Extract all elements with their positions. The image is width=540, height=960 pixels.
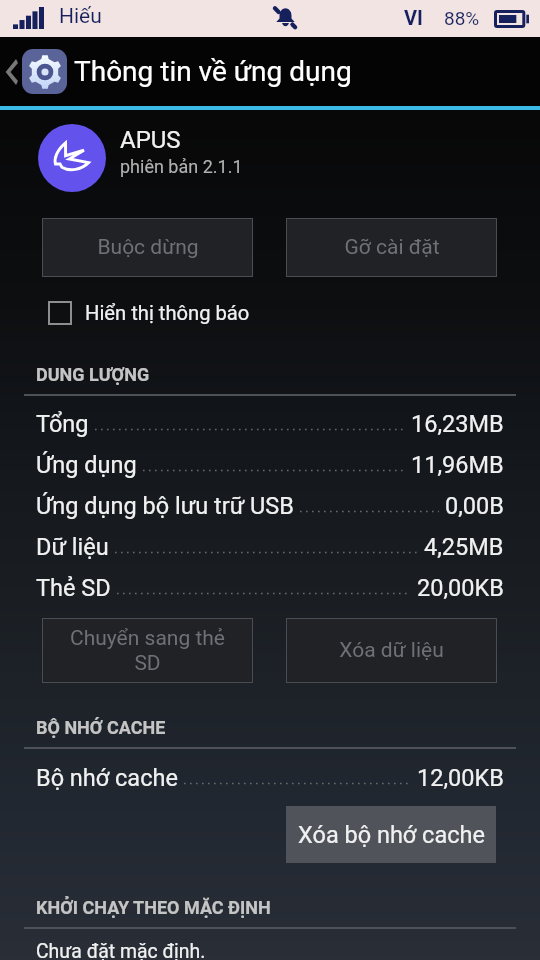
staticText: 4,25MB — [424, 533, 504, 561]
staticText: Thẻ SD — [36, 574, 111, 602]
staticText: APUS — [120, 126, 181, 154]
staticText: phiên bản 2.1.1 — [120, 156, 243, 177]
staticText: Xóa dữ liệu — [339, 638, 444, 663]
staticText: KHỞI CHẠY THEO MẶC ĐỊNH — [36, 897, 271, 918]
button[interactable]: Chuyển sang thẻ SD — [42, 618, 253, 683]
staticText: DUNG LƯỢNG — [36, 364, 150, 385]
staticText: Ứng dụng bộ lưu trữ USB — [36, 492, 294, 520]
staticText: Gỡ cài đặt — [344, 235, 440, 260]
staticText: 0,00B — [445, 492, 504, 520]
staticText: Buộc dừng — [97, 235, 199, 260]
staticText: Xóa bộ nhớ cache — [298, 821, 485, 849]
staticText: 20,00KB — [417, 574, 504, 602]
staticText: 16,23MB — [411, 410, 504, 438]
staticText: Tổng — [36, 410, 89, 438]
staticText: 11,96MB — [411, 451, 504, 479]
staticText: 12,00KB — [417, 764, 504, 792]
button[interactable]: Ứng dụng — [0, 444, 540, 485]
staticText: VI — [404, 6, 423, 29]
button[interactable]: Bộ nhớ cache — [0, 757, 540, 798]
staticText: Dữ liệu — [36, 533, 109, 561]
button[interactable]: Xóa dữ liệu — [286, 618, 497, 683]
button[interactable]: Thẻ SD — [0, 567, 540, 608]
button[interactable]: Gỡ cài đặt — [286, 218, 497, 277]
staticText: Hiếu — [59, 4, 102, 29]
staticText: Hiển thị thông báo — [85, 301, 250, 325]
staticText: Chuyển sang thẻ SD — [58, 626, 237, 676]
staticText: BỘ NHỚ CACHE — [36, 717, 166, 738]
staticText: Chưa đặt mặc định. — [36, 940, 206, 960]
button[interactable]: Ứng dụng bộ lưu trữ USB — [0, 485, 540, 526]
button[interactable]: Back — [0, 37, 22, 106]
staticText: Bộ nhớ cache — [36, 764, 178, 792]
button[interactable]: Buộc dừng — [42, 218, 253, 277]
button[interactable]: Tổng — [0, 403, 540, 444]
button[interactable]: Dữ liệu — [0, 526, 540, 567]
staticText: Ứng dụng — [36, 451, 137, 479]
button[interactable]: Hiển thị thông báo — [48, 294, 250, 332]
button[interactable]: Settings — [22, 49, 67, 94]
staticText: 88% — [444, 7, 480, 29]
staticText: Thông tin về ứng dụng — [74, 55, 352, 88]
button[interactable]: Xóa bộ nhớ cache — [286, 806, 496, 863]
